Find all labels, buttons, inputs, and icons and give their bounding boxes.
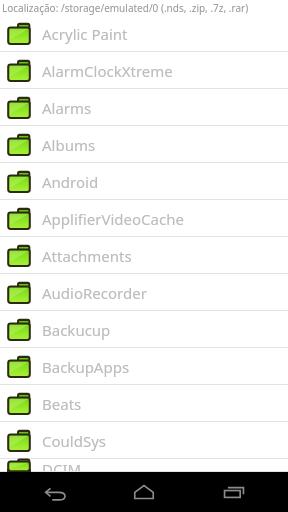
staticText: AudioRecorder: [42, 283, 147, 303]
button[interactable]: Android: [0, 163, 288, 200]
staticText: CouldSys: [42, 431, 106, 451]
button[interactable]: DCIM: [0, 459, 288, 472]
staticText: Backucup: [42, 320, 111, 340]
staticText: BackupApps: [42, 357, 130, 377]
button[interactable]: Localização: /storage/emulated/0 (.nds, …: [0, 0, 288, 15]
button[interactable]: CouldSys: [0, 422, 288, 459]
button[interactable]: ApplifierVideoCache: [0, 200, 288, 237]
staticText: Localização: /storage/emulated/0 (.nds, …: [2, 1, 249, 15]
button[interactable]: Home: [108, 472, 180, 512]
staticText: Android: [42, 172, 99, 192]
button[interactable]: Attachments: [0, 237, 288, 274]
button[interactable]: AudioRecorder: [0, 274, 288, 311]
button[interactable]: Back: [18, 472, 90, 512]
staticText: ApplifierVideoCache: [42, 209, 184, 229]
button[interactable]: AlarmClockXtreme: [0, 52, 288, 89]
button[interactable]: Albums: [0, 126, 288, 163]
staticText: Acrylic Paint: [42, 24, 128, 44]
button[interactable]: Acrylic Paint: [0, 15, 288, 52]
button[interactable]: BackupApps: [0, 348, 288, 385]
button[interactable]: Recent apps: [198, 472, 270, 512]
staticText: DCIM: [42, 459, 82, 472]
staticText: AlarmClockXtreme: [42, 61, 173, 81]
staticText: Attachments: [42, 246, 132, 266]
button[interactable]: Beats: [0, 385, 288, 422]
staticText: Beats: [42, 394, 82, 414]
staticText: Alarms: [42, 98, 92, 118]
button[interactable]: Alarms: [0, 89, 288, 126]
staticText: Albums: [42, 135, 96, 155]
button[interactable]: Backucup: [0, 311, 288, 348]
